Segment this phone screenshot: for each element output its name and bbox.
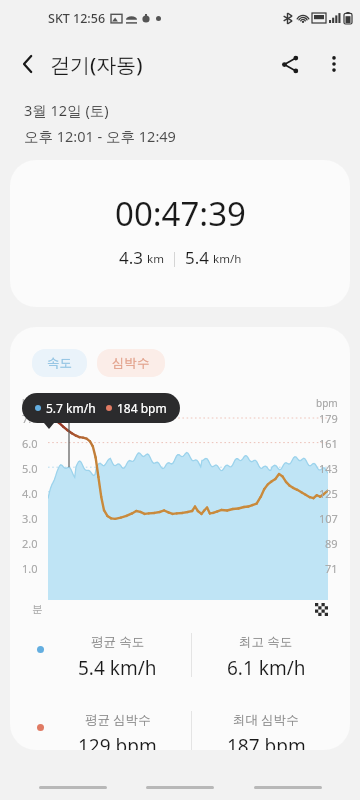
staticText: 3.0 xyxy=(22,511,38,526)
staticText: 89 xyxy=(325,536,338,551)
staticText: 71 xyxy=(325,561,338,576)
staticText: 00:47:39 xyxy=(115,191,246,236)
staticText: 2.0 xyxy=(22,536,38,551)
button[interactable]: More options xyxy=(312,42,356,86)
staticText: km/h xyxy=(22,396,47,410)
staticText: 1.0 xyxy=(22,561,38,576)
staticText: 161 xyxy=(319,436,338,451)
staticText: 3월 12일 (토) xyxy=(24,100,109,120)
staticText: 179 xyxy=(319,411,338,426)
staticText: 속도 xyxy=(47,355,72,371)
staticText: 5.0 xyxy=(22,461,38,476)
staticText: 107 xyxy=(319,511,338,526)
button[interactable]: Navigation xyxy=(253,777,323,797)
staticText: 6.0 xyxy=(22,436,38,451)
staticText: 7.0 xyxy=(22,411,38,426)
staticText: 6.1 km/h xyxy=(227,655,306,681)
button[interactable]: Navigation xyxy=(145,777,215,797)
button[interactable]: Share xyxy=(268,42,312,86)
button[interactable]: 속도 xyxy=(32,349,87,377)
staticText: 5.4 xyxy=(185,246,210,269)
staticText: 최대 심박수 xyxy=(233,711,299,728)
button[interactable]: 평균 심박수 xyxy=(44,711,191,750)
staticText: 걷기(자동) xyxy=(50,51,143,78)
staticText: 4.3 xyxy=(119,246,144,269)
button[interactable]: Back xyxy=(6,42,50,86)
staticText: 평균 속도 xyxy=(91,633,145,650)
button[interactable]: 최대 심박수 xyxy=(192,711,340,750)
staticText: km xyxy=(147,251,164,267)
staticText: 5.4 km/h xyxy=(78,655,157,681)
staticText: 5.7 km/h xyxy=(46,400,96,416)
button[interactable]: 00:47:39 xyxy=(10,160,350,307)
button[interactable]: 최고 속도 xyxy=(192,633,340,681)
staticText: 184 bpm xyxy=(117,400,167,416)
staticText: 125 xyxy=(319,486,338,501)
button[interactable]: 평균 속도 xyxy=(44,633,191,681)
staticText: 187 bpm xyxy=(227,733,306,750)
staticText: bpm xyxy=(316,396,338,410)
button[interactable]: 5.7 km/h xyxy=(22,393,180,423)
staticText: 분 xyxy=(32,603,43,616)
button[interactable]: Navigation xyxy=(38,777,108,797)
staticText: 심박수 xyxy=(112,355,150,371)
staticText: 오후 12:01 - 오후 12:49 xyxy=(24,126,176,146)
staticText: 4.0 xyxy=(22,486,38,501)
staticText: 129 bpm xyxy=(78,733,157,750)
staticText: SKT 12:56 xyxy=(48,10,106,27)
staticText: 최고 속도 xyxy=(239,633,293,650)
staticText: km/h xyxy=(213,251,242,267)
button[interactable]: 심박수 xyxy=(97,349,165,377)
staticText: 143 xyxy=(319,461,338,476)
staticText: 평균 심박수 xyxy=(85,711,151,728)
